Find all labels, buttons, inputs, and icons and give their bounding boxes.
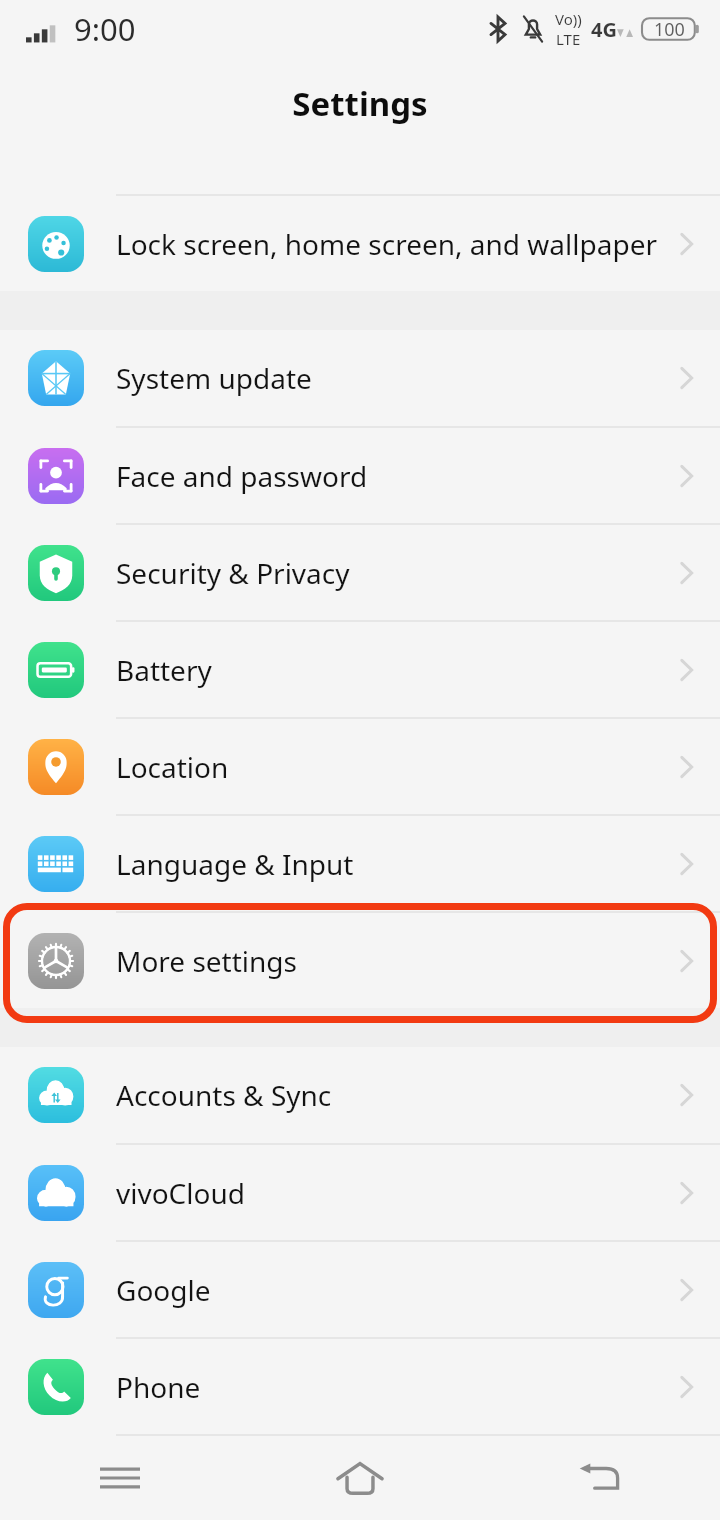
staticText: 4G: [591, 16, 617, 43]
staticText: Battery: [116, 651, 674, 689]
button[interactable]: Battery: [0, 622, 720, 717]
button[interactable]: Language & Input: [0, 816, 720, 911]
staticText: More settings: [116, 942, 674, 980]
staticText: Google: [116, 1271, 674, 1309]
staticText: Face and password: [116, 457, 674, 495]
button[interactable]: Location: [0, 719, 720, 814]
staticText: Language & Input: [116, 845, 674, 883]
button[interactable]: Face and password: [0, 428, 720, 523]
button[interactable]: Google: [0, 1242, 720, 1337]
button[interactable]: More settings: [0, 913, 720, 1008]
staticText: Settings: [292, 81, 428, 126]
staticText: Phone: [116, 1368, 674, 1406]
button[interactable]: System update: [0, 330, 720, 426]
staticText: LTE: [556, 29, 581, 49]
staticText: 100: [654, 17, 685, 42]
button[interactable]: Phone: [0, 1339, 720, 1434]
button[interactable]: vivoCloud: [0, 1145, 720, 1240]
button[interactable]: Menu: [0, 1436, 240, 1520]
staticText: 9:00: [74, 8, 136, 50]
button[interactable]: Security & Privacy: [0, 525, 720, 620]
staticText: Accounts & Sync: [116, 1076, 674, 1114]
button[interactable]: Accounts & Sync: [0, 1047, 720, 1143]
staticText: Location: [116, 748, 674, 786]
staticText: Vo)): [555, 9, 582, 29]
button[interactable]: Back: [480, 1436, 720, 1520]
button[interactable]: Home: [240, 1436, 480, 1520]
staticText: vivoCloud: [116, 1174, 674, 1212]
staticText: Lock screen, home screen, and wallpaper: [116, 225, 674, 263]
staticText: Security & Privacy: [116, 554, 674, 592]
button[interactable]: Lock screen, home screen, and wallpaper: [0, 196, 720, 291]
staticText: System update: [116, 359, 674, 397]
